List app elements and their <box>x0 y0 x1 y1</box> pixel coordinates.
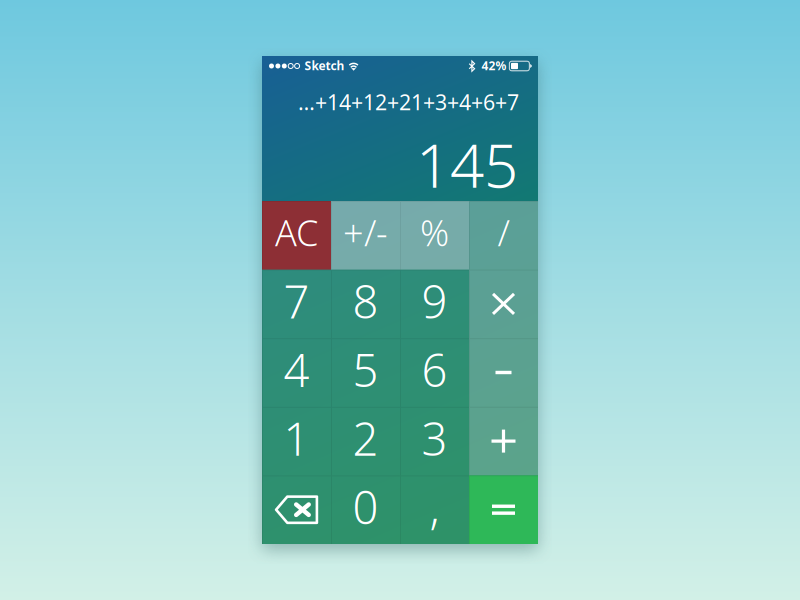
staticText: +/- <box>343 208 388 256</box>
staticText: 4 <box>283 339 309 400</box>
staticText: 7 <box>283 271 309 331</box>
button[interactable]: 8 <box>331 270 400 338</box>
button[interactable]: 7 <box>262 270 331 338</box>
staticText: 5 <box>352 339 378 400</box>
button[interactable]: Add <box>469 407 538 475</box>
staticText: % <box>420 208 449 256</box>
staticText: 42% <box>481 57 506 73</box>
button[interactable]: % <box>400 201 469 270</box>
button[interactable]: 4 <box>262 338 331 407</box>
staticText: 145 <box>416 125 518 204</box>
button[interactable]: 1 <box>262 407 331 475</box>
button[interactable]: 3 <box>400 407 469 475</box>
staticText: 1 <box>283 408 309 468</box>
button[interactable]: 0 <box>331 475 400 544</box>
staticText: / <box>497 208 509 256</box>
button[interactable]: 9 <box>400 270 469 338</box>
staticText: Sketch <box>305 57 345 73</box>
button[interactable]: Equals <box>469 475 538 544</box>
button[interactable]: Subtract <box>469 338 538 407</box>
staticText: 3 <box>421 408 447 468</box>
staticText: 6 <box>421 339 447 400</box>
staticText: …+14+12+21+3+4+6+7 <box>298 88 519 116</box>
staticText: 2 <box>352 408 378 468</box>
staticText: 0 <box>352 477 378 537</box>
button[interactable]: Delete <box>262 475 331 544</box>
staticText: AC <box>275 208 318 256</box>
staticText: 8 <box>352 271 378 331</box>
button[interactable]: +/- <box>331 201 400 270</box>
button[interactable]: Multiply <box>469 270 538 338</box>
button[interactable]: AC <box>262 201 331 270</box>
staticText: 9 <box>421 271 447 331</box>
button[interactable]: 6 <box>400 338 469 407</box>
button[interactable]: , <box>400 475 469 544</box>
button[interactable]: 2 <box>331 407 400 475</box>
button[interactable]: 5 <box>331 338 400 407</box>
button[interactable]: / <box>469 201 538 270</box>
staticText: , <box>429 477 439 537</box>
